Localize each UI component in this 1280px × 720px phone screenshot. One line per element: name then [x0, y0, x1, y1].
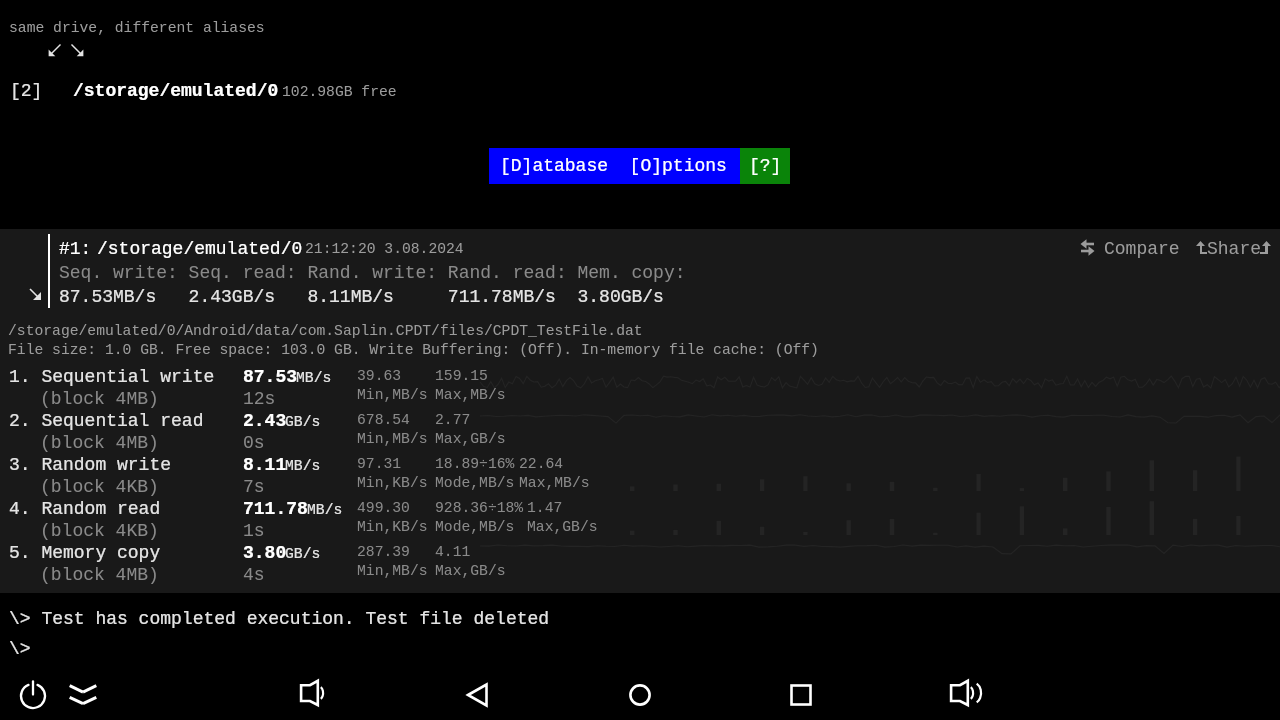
button[interactable]: 1. Sequential write: [0, 367, 1280, 411]
staticText: GB/s: [285, 414, 321, 431]
staticText: Max,GB/s: [527, 519, 598, 536]
staticText: File size: 1.0 GB. Free space: 103.0 GB.…: [8, 342, 819, 359]
staticText: Min,KB/s: [357, 475, 428, 492]
staticText: \> Test has completed execution. Test fi…: [9, 609, 550, 629]
staticText: 5. Memory copy: [9, 543, 161, 563]
staticText: 928.36÷18%: [435, 500, 524, 517]
button[interactable]: [?]: [740, 148, 790, 184]
staticText: 678.54: [357, 412, 410, 429]
staticText: Max,GB/s: [435, 431, 506, 448]
staticText: (block 4MB): [40, 565, 159, 585]
button[interactable]: 4. Random read: [0, 499, 1280, 543]
staticText: GB/s: [285, 546, 321, 563]
staticText: #1:: [59, 239, 92, 259]
staticText: Min,MB/s: [357, 387, 428, 404]
button[interactable]: Home: [618, 673, 662, 717]
staticText: [D]atabase [O]ptions: [500, 156, 727, 176]
staticText: 0s: [243, 433, 265, 453]
staticText: MB/s: [307, 502, 343, 519]
staticText: 1. Sequential write: [9, 367, 215, 387]
staticText: 2.43: [243, 411, 287, 431]
staticText: /storage/emulated/0/Android/data/com.Sap…: [8, 323, 643, 340]
staticText: Share: [1207, 239, 1262, 259]
staticText: Max,GB/s: [435, 563, 506, 580]
button[interactable]: Volume mode: [61, 673, 105, 717]
staticText: /storage/emulated/0: [73, 81, 279, 101]
staticText: (block 4KB): [40, 521, 159, 541]
staticText: (block 4MB): [40, 389, 159, 409]
staticText: MB/s: [285, 458, 321, 475]
staticText: 2. Sequential read: [9, 411, 204, 431]
staticText: 4.11: [435, 544, 471, 561]
staticText: [?]: [749, 156, 782, 176]
staticText: 1s: [243, 521, 265, 541]
staticText: Min,KB/s: [357, 519, 428, 536]
staticText: (block 4MB): [40, 433, 159, 453]
staticText: 22.64: [519, 456, 564, 473]
button[interactable]: Power: [11, 673, 55, 717]
staticText: 39.63: [357, 368, 402, 385]
button[interactable]: Compare: [1075, 236, 1181, 260]
staticText: \>: [9, 639, 31, 659]
button[interactable]: Recents: [779, 673, 823, 717]
staticText: Compare: [1104, 239, 1180, 259]
button[interactable]: 3. Random write: [0, 455, 1280, 499]
staticText: 287.39: [357, 544, 410, 561]
button[interactable]: [D]atabase [O]ptions: [489, 148, 740, 184]
button[interactable]: 2. Sequential read: [0, 411, 1280, 455]
staticText: (block 4KB): [40, 477, 159, 497]
staticText: same drive, different aliases: [9, 20, 265, 37]
staticText: 4. Random read: [9, 499, 161, 519]
staticText: Max,MB/s: [519, 475, 590, 492]
staticText: 7s: [243, 477, 265, 497]
staticText: 8.11: [243, 455, 287, 475]
button[interactable]: Volume up: [942, 673, 986, 717]
staticText: MB/s: [296, 370, 332, 387]
staticText: 102.98GB free: [282, 84, 397, 101]
button[interactable]: Back: [456, 673, 500, 717]
staticText: /storage/emulated/0: [97, 239, 303, 259]
staticText: 3.80: [243, 543, 287, 563]
staticText: 87.53: [243, 367, 298, 387]
staticText: Min,MB/s: [357, 431, 428, 448]
button[interactable]: Volume down: [292, 673, 336, 717]
button[interactable]: 5. Memory copy: [0, 543, 1280, 587]
staticText: Min,MB/s: [357, 563, 428, 580]
staticText: 2.77: [435, 412, 471, 429]
staticText: 97.31: [357, 456, 402, 473]
staticText: 12s: [243, 389, 276, 409]
staticText: Mode,MB/s: [435, 475, 515, 492]
staticText: 18.89÷16%: [435, 456, 515, 473]
staticText: Mode,MB/s: [435, 519, 515, 536]
staticText: 21:12:20 3.08.2024: [305, 241, 464, 258]
staticText: [2]: [10, 81, 43, 101]
staticText: Max,MB/s: [435, 387, 506, 404]
staticText: Seq. write: Seq. read: Rand. write: Rand…: [59, 263, 686, 283]
button[interactable]: Share: [1194, 236, 1272, 260]
staticText: 87.53MB/s 2.43GB/s 8.11MB/s 711.78MB/s 3…: [59, 287, 664, 307]
staticText: 711.78: [243, 499, 308, 519]
staticText: 159.15: [435, 368, 488, 385]
staticText: 3. Random write: [9, 455, 172, 475]
staticText: 4s: [243, 565, 265, 585]
staticText: 1.47: [527, 500, 563, 517]
staticText: 499.30: [357, 500, 410, 517]
